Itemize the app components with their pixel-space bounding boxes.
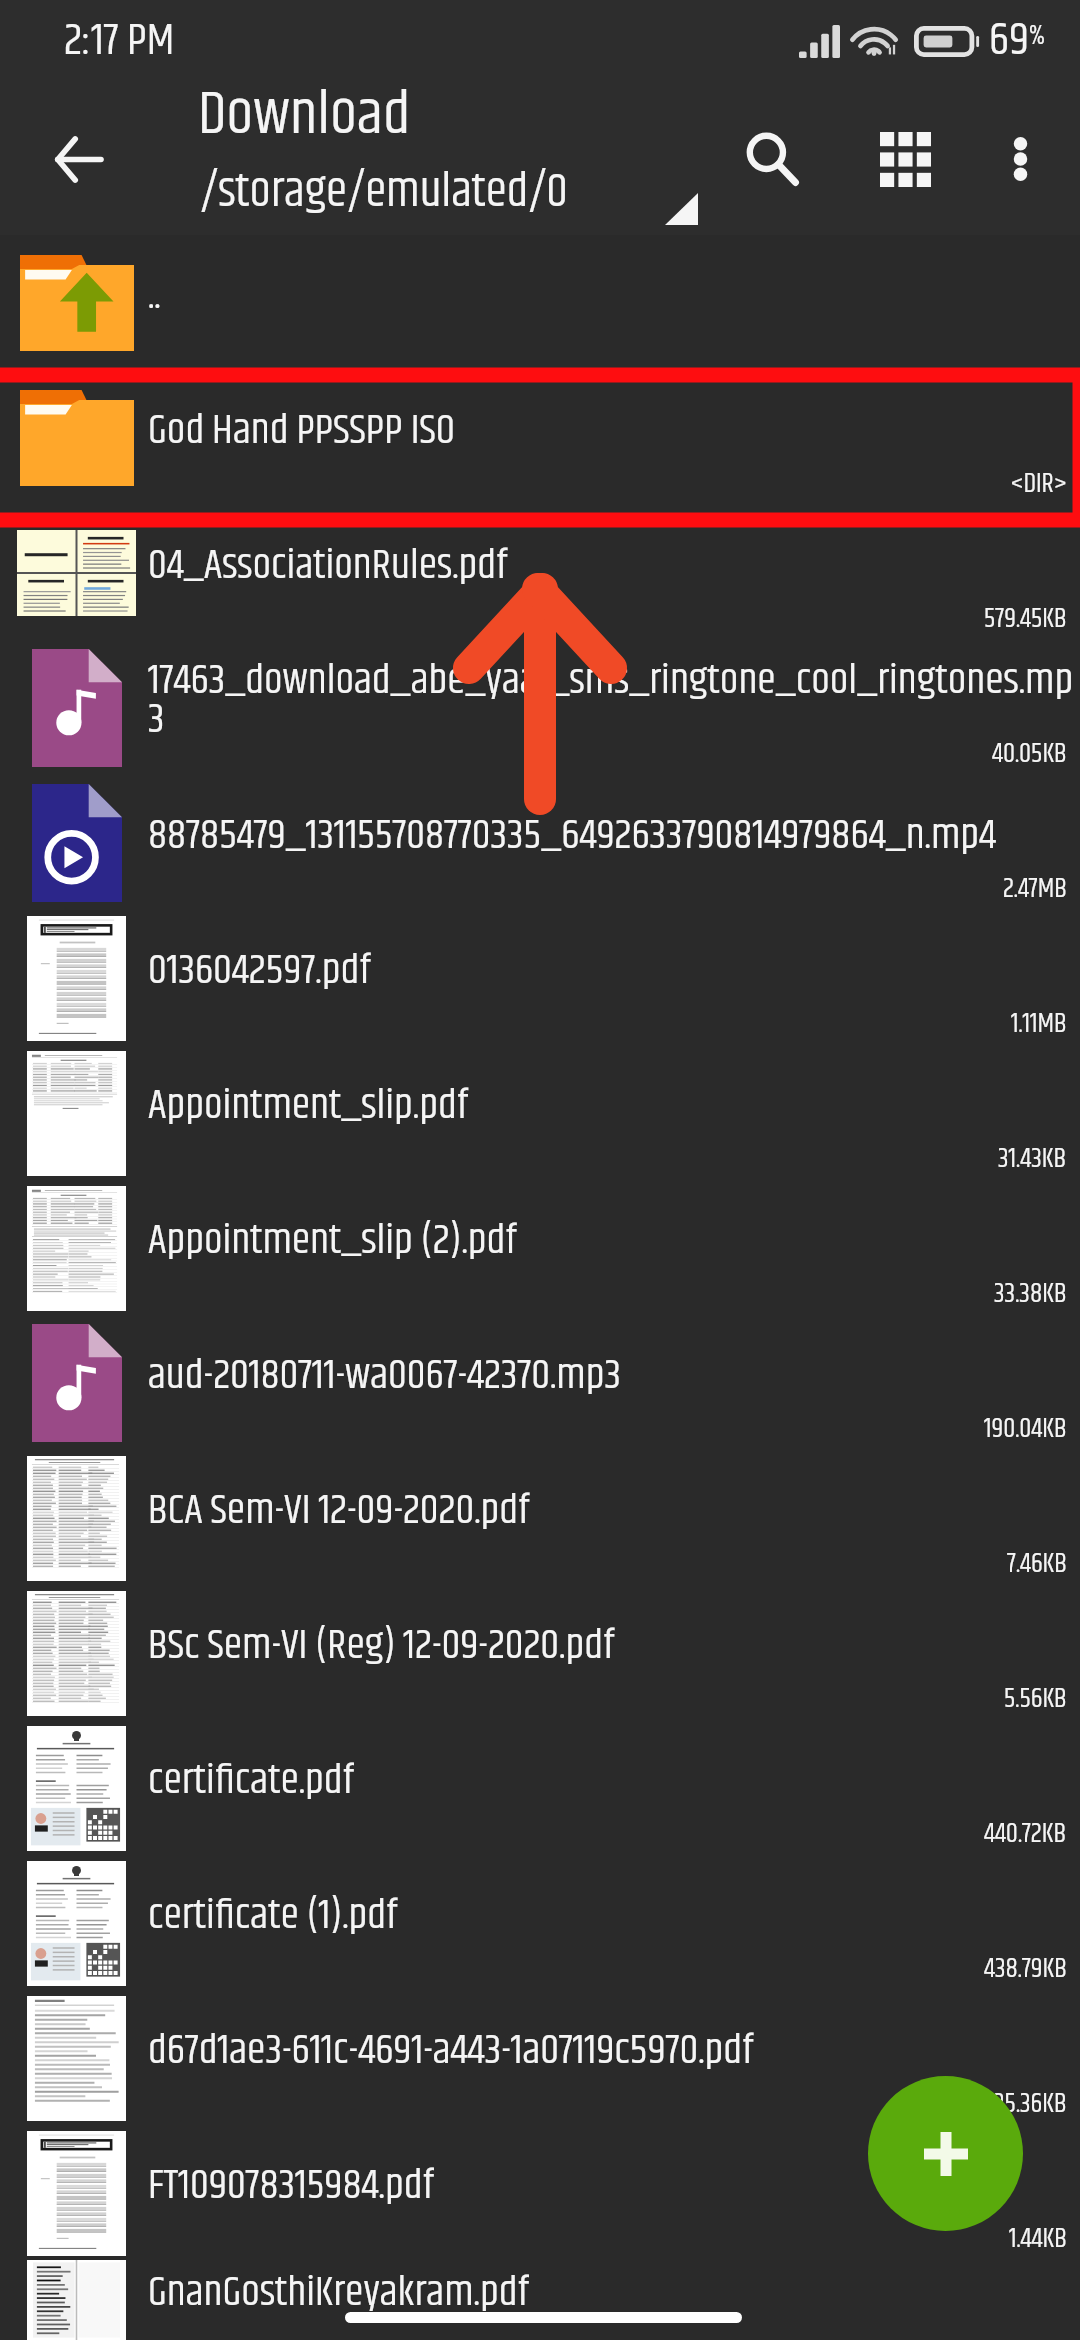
staticText: 0136042597.pdf: [148, 939, 371, 1003]
staticText: d67d1ae3-611c-4691-a443-1a07119c5970.pdf: [148, 2019, 754, 2083]
staticText: GnanGosthiKreyakram.pdf: [148, 2261, 529, 2325]
staticText: aud-20180711-wa0067-42370.mp3: [148, 1344, 621, 1408]
button[interactable]: 0136042597.pdf: [0, 910, 1080, 1045]
staticText: BSc Sem-VI (Reg) 12-09-2020.pdf: [148, 1614, 615, 1678]
staticText: 04_AssociationRules.pdf: [148, 534, 508, 598]
staticText: <DIR>: [1011, 464, 1067, 505]
button[interactable]: certificate.pdf: [0, 1720, 1080, 1855]
button[interactable]: God Hand PPSSPP ISO: [0, 370, 1080, 505]
button[interactable]: More options: [965, 104, 1075, 214]
button[interactable]: Appointment_slip.pdf: [0, 1045, 1080, 1180]
staticText: 1.44KB: [1009, 2219, 1067, 2260]
staticText: 33.38KB: [994, 1274, 1067, 1315]
button[interactable]: BCA Sem-VI 12-09-2020.pdf: [0, 1450, 1080, 1585]
staticText: 190.04KB: [984, 1409, 1067, 1450]
staticText: 17463_download_abe_yaar_sms_ringtone_coo…: [148, 649, 1074, 752]
button[interactable]: Download: [198, 69, 618, 147]
staticText: BCA Sem-VI 12-09-2020.pdf: [148, 1479, 530, 1543]
staticText: certificate.pdf: [148, 1749, 355, 1813]
staticText: 440.72KB: [984, 1814, 1067, 1855]
staticText: %: [1029, 15, 1045, 58]
staticText: 1.11MB: [1011, 1004, 1067, 1045]
staticText: Appointment_slip (2).pdf: [148, 1209, 517, 1273]
button[interactable]: 04_AssociationRules.pdf: [0, 505, 1080, 640]
button[interactable]: /storage/emulated/0: [200, 156, 620, 218]
staticText: 438.79KB: [984, 1949, 1067, 1990]
staticText: God Hand PPSSPP ISO: [148, 399, 455, 463]
staticText: certificate (1).pdf: [148, 1884, 398, 1948]
staticText: ..: [148, 264, 161, 328]
button[interactable]: aud-20180711-wa0067-42370.mp3: [0, 1315, 1080, 1450]
staticText: 2:17 PM: [64, 7, 175, 76]
button[interactable]: Back: [22, 103, 134, 215]
button[interactable]: 17463_download_abe_yaar_sms_ringtone_coo…: [0, 640, 1080, 775]
staticText: 88785479_131155708770335_649263379081497…: [148, 804, 997, 868]
staticText: Appointment_slip.pdf: [148, 1074, 469, 1138]
button[interactable]: certificate (1).pdf: [0, 1855, 1080, 1990]
staticText: 579.45KB: [984, 599, 1067, 640]
staticText: 7.46KB: [1007, 1544, 1067, 1585]
button[interactable]: ..: [0, 235, 1080, 370]
button[interactable]: FT109078315984.pdf: [0, 2125, 1080, 2260]
staticText: 2.47MB: [1003, 869, 1067, 910]
button[interactable]: Change view: [850, 104, 960, 214]
button[interactable]: Add: [868, 2076, 1023, 2231]
staticText: 35.36KB: [994, 2084, 1067, 2125]
button[interactable]: BSc Sem-VI (Reg) 12-09-2020.pdf: [0, 1585, 1080, 1720]
staticText: Download: [198, 69, 411, 147]
button[interactable]: Search: [717, 104, 827, 214]
button[interactable]: Appointment_slip (2).pdf: [0, 1180, 1080, 1315]
staticText: /storage/emulated/0: [200, 156, 568, 218]
staticText: 69: [989, 6, 1029, 76]
button[interactable]: 88785479_131155708770335_649263379081497…: [0, 775, 1080, 910]
button[interactable]: d67d1ae3-611c-4691-a443-1a07119c5970.pdf: [0, 1990, 1080, 2125]
staticText: 40.05KB: [992, 734, 1067, 775]
staticText: 5.56KB: [1004, 1679, 1067, 1720]
button[interactable]: GnanGosthiKreyakram.pdf: [0, 2260, 1080, 2340]
staticText: FT109078315984.pdf: [148, 2154, 434, 2218]
staticText: 31.43KB: [998, 1139, 1067, 1180]
